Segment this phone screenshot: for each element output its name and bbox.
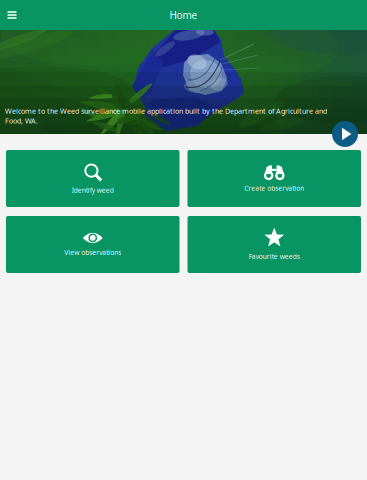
staticText: Favourite weeds [249, 252, 300, 261]
staticText: View observations [64, 248, 121, 257]
staticText: Welcome to the Weed surveillance mobile … [5, 106, 327, 126]
staticText: Identify weed [72, 186, 114, 195]
staticText: Create observation [244, 184, 304, 193]
button[interactable]: Play video [332, 121, 358, 147]
button[interactable]: Create observation [187, 150, 361, 207]
button[interactable]: View observations [6, 216, 179, 273]
button[interactable]: Menu [2, 0, 22, 30]
button[interactable]: Identify weed [6, 150, 179, 207]
staticText: Home [169, 8, 197, 22]
button[interactable]: Favourite weeds [187, 216, 361, 273]
